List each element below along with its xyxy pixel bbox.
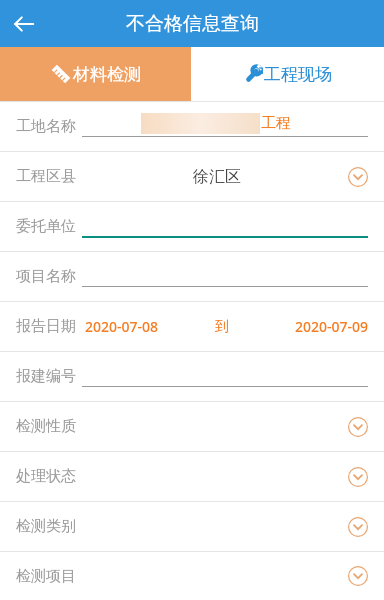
button[interactable]: 检测性质	[0, 402, 384, 451]
other: Expand	[348, 467, 368, 487]
staticText: 委托单位	[16, 217, 76, 236]
other: Expand	[348, 517, 368, 537]
button[interactable]: 检测项目	[0, 552, 384, 600]
button[interactable]: Back	[0, 0, 48, 47]
button[interactable]: 材料检测	[0, 47, 191, 101]
staticText: 徐汇区	[193, 167, 241, 187]
button[interactable]: 检测类别	[0, 502, 384, 551]
staticText: 不合格信息查询	[126, 12, 259, 36]
staticText: 报告日期	[16, 317, 76, 336]
staticText: 工程区县	[16, 167, 76, 186]
staticText: 2020-07-09	[295, 317, 369, 336]
staticText: 检测性质	[16, 417, 76, 436]
other: Expand	[348, 566, 368, 586]
staticText: 检测类别	[16, 517, 76, 536]
button[interactable]: 处理状态	[0, 452, 384, 501]
staticText: 到	[215, 318, 229, 336]
staticText: 检测项目	[16, 567, 76, 586]
button[interactable]: 工程区县	[0, 152, 384, 201]
staticText: 工程	[261, 114, 291, 133]
staticText: 报建编号	[16, 367, 76, 386]
other: Expand	[348, 167, 368, 187]
staticText: 2020-07-08	[85, 317, 159, 336]
other: Expand	[348, 417, 368, 437]
staticText: 处理状态	[16, 467, 76, 486]
button[interactable]: 工程现场	[191, 47, 384, 101]
staticText: 项目名称	[16, 267, 76, 286]
staticText: 工程现场	[264, 64, 332, 85]
staticText: 工地名称	[16, 117, 76, 136]
staticText: 材料检测	[73, 64, 141, 85]
